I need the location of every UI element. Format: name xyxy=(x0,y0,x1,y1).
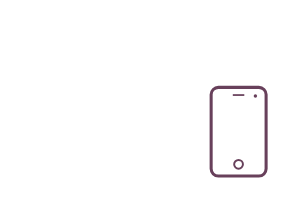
button[interactable]: Phone xyxy=(0,0,300,200)
